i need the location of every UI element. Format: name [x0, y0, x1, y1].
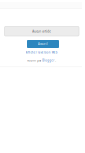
staticText: Accueil — [38, 42, 48, 46]
staticText: Fourni par — [27, 59, 41, 62]
button[interactable]: Accueil — [27, 40, 59, 48]
staticText: . — [55, 59, 56, 62]
staticText: Aucun article — [32, 29, 51, 33]
staticText: Blogger — [42, 59, 54, 62]
button[interactable]: Blogger — [42, 59, 54, 62]
staticText: Afficher la version Web — [26, 51, 58, 54]
button[interactable]: Afficher la version Web — [4, 50, 79, 55]
